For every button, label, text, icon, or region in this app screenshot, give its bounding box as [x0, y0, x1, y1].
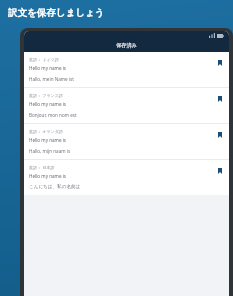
staticText: 保存済み: [116, 42, 137, 49]
staticText: こんにちは、私の名前は: [29, 184, 81, 190]
staticText: Hello my name is: [29, 137, 67, 143]
button[interactable]: 英語 › オランダ語: [24, 124, 229, 159]
button[interactable]: 英語 › ドイツ語: [24, 52, 229, 87]
staticText: Bonjour, mon nom est: [29, 112, 77, 118]
staticText: Hello my name is: [29, 173, 67, 179]
button[interactable]: Remove from saved: [214, 57, 225, 68]
button[interactable]: 英語 › 日本語: [24, 160, 229, 195]
button[interactable]: 英語 › フランス語: [24, 88, 229, 123]
staticText: 英語 › 日本語: [29, 165, 55, 170]
staticText: 英語 › ドイツ語: [29, 57, 59, 62]
staticText: Hello my name is: [29, 65, 67, 71]
staticText: Hello my name is: [29, 101, 67, 107]
button[interactable]: Remove from saved: [214, 165, 225, 176]
staticText: 英語 › フランス語: [29, 93, 63, 98]
button[interactable]: Remove from saved: [214, 93, 225, 104]
staticText: 訳文を保存しましょう: [8, 7, 105, 19]
button[interactable]: Remove from saved: [214, 129, 225, 140]
staticText: Hallo, mein Name ist: [29, 76, 74, 82]
staticText: Hallo, mijn naam is: [29, 148, 71, 154]
staticText: 英語 › オランダ語: [29, 129, 63, 134]
